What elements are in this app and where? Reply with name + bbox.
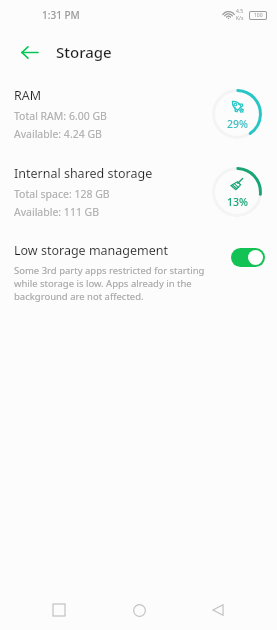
button[interactable]: Low storage management toggle [231, 248, 265, 267]
button[interactable]: Home [119, 590, 159, 630]
staticText: 100 [254, 12, 263, 19]
staticText: Total RAM: 6.00 GB [14, 109, 107, 123]
staticText: Available: 111 GB [14, 205, 100, 219]
staticText: Available: 4.24 GB [14, 127, 102, 141]
button[interactable]: Back [198, 590, 238, 630]
staticText: Total space: 128 GB [14, 187, 110, 201]
staticText: Some 3rd party apps restricted for start… [14, 264, 223, 303]
staticText: RAM [14, 87, 42, 104]
staticText: 29% [227, 117, 248, 131]
staticText: 1:31 PM [42, 8, 80, 22]
staticText: Internal shared storage [14, 165, 153, 182]
staticText: Low storage management [14, 242, 169, 259]
button[interactable]: Low storage management [0, 238, 277, 307]
button[interactable]: Internal shared storage [0, 160, 277, 224]
button[interactable]: Recents [39, 590, 79, 630]
staticText: 13% [227, 195, 248, 209]
staticText: Storage [56, 42, 112, 62]
staticText: K/s [236, 15, 244, 22]
button[interactable]: Back [14, 37, 44, 67]
button[interactable]: RAM [0, 82, 277, 146]
staticText: 4.5 [236, 8, 244, 15]
